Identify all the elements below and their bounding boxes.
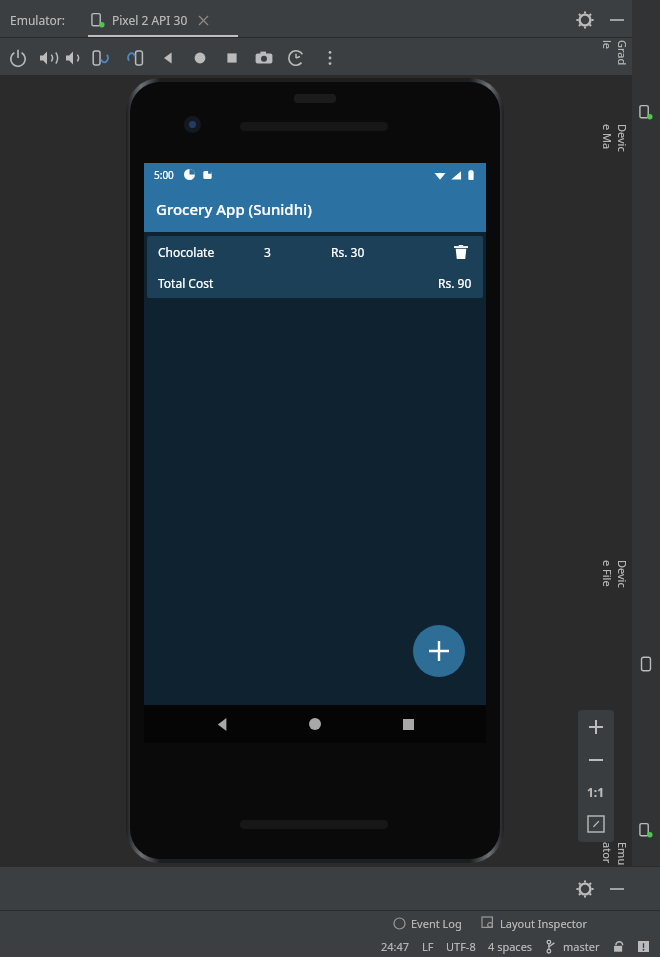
button[interactable]: Screenshot — [254, 48, 274, 68]
staticText: Rs. 30 — [331, 244, 365, 260]
button[interactable]: Actual size — [578, 776, 614, 808]
button[interactable]: Hide — [608, 880, 626, 898]
staticText: Grocery App (Sunidhi) — [156, 199, 312, 219]
button[interactable]: Back — [207, 709, 237, 739]
button[interactable]: Event Log — [393, 916, 462, 931]
button[interactable]: Recent apps — [393, 709, 423, 739]
staticText: Layout Inspector — [500, 916, 588, 931]
button[interactable]: Minimize — [608, 11, 626, 29]
button[interactable]: Device Manager — [602, 124, 630, 152]
button[interactable]: Overview — [222, 48, 242, 68]
button[interactable]: LF — [422, 939, 434, 954]
button[interactable]: Home — [300, 709, 330, 739]
staticText: Device Manager — [602, 124, 630, 152]
staticText: Emulator: — [10, 12, 65, 28]
button[interactable]: Layout Inspector — [482, 916, 588, 931]
button[interactable]: Back — [158, 48, 178, 68]
button[interactable]: Power — [8, 48, 28, 68]
staticText: Gradle — [602, 40, 630, 68]
staticText: Event Log — [411, 916, 462, 931]
button[interactable]: Volume up — [38, 48, 58, 68]
button[interactable]: History — [286, 48, 306, 68]
button[interactable]: Settings — [576, 11, 594, 29]
button[interactable]: Pixel 2 API 30 — [90, 8, 210, 32]
button[interactable]: Gradle — [602, 40, 630, 68]
button[interactable]: Branch — [545, 940, 558, 953]
staticText: 3 — [264, 244, 271, 260]
button[interactable]: Settings — [576, 880, 594, 898]
button[interactable]: Rotate right — [124, 48, 144, 68]
button[interactable]: Notifications — [637, 940, 650, 953]
staticText: Emulator — [602, 842, 630, 870]
staticText: Rs. 90 — [438, 275, 472, 291]
button[interactable]: Zoom out — [578, 744, 614, 776]
staticText: 1:1 — [587, 784, 605, 800]
staticText: Total Cost — [158, 275, 214, 291]
button[interactable]: Device File Explorer — [602, 560, 630, 588]
button[interactable]: Volume down — [64, 48, 84, 68]
button[interactable]: Home — [190, 48, 210, 68]
button[interactable]: Chocolate — [147, 236, 483, 268]
button[interactable]: Delete — [450, 241, 472, 263]
button[interactable]: Lock — [612, 940, 625, 953]
staticText: Device File Explorer — [602, 560, 630, 588]
button[interactable]: Rotate left — [92, 48, 112, 68]
button[interactable]: 24:47 — [381, 939, 410, 954]
button[interactable]: UTF-8 — [446, 939, 476, 954]
button[interactable]: master — [563, 939, 600, 954]
button[interactable]: Zoom in — [578, 710, 614, 744]
button[interactable]: More — [320, 48, 340, 68]
button[interactable]: Fit to screen — [578, 808, 614, 840]
button[interactable]: Add item — [413, 625, 465, 677]
staticText: Pixel 2 API 30 — [112, 12, 188, 28]
button[interactable]: Emulator — [602, 842, 630, 870]
staticText: Chocolate — [158, 244, 215, 260]
button[interactable]: 4 spaces — [488, 939, 533, 954]
staticText: 5:00 — [154, 168, 174, 182]
button[interactable]: Close tab — [196, 13, 210, 27]
